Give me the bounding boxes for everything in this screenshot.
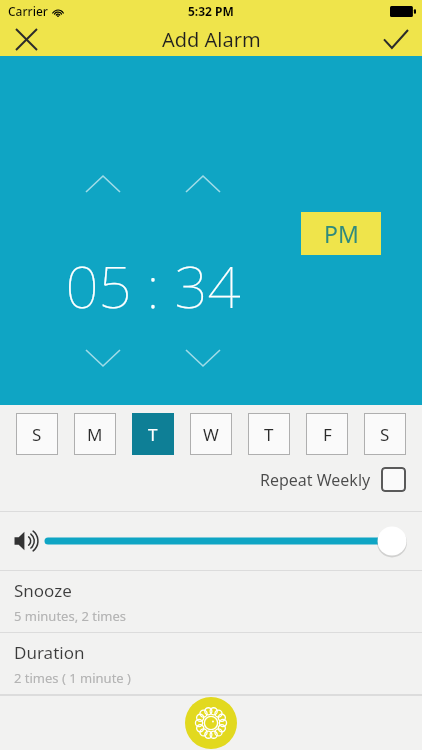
button[interactable]: Duration [0,633,422,694]
staticText: T [264,423,274,446]
staticText: M [87,423,103,446]
button[interactable]: Cancel [0,22,52,56]
button[interactable]: Settings [185,697,237,749]
button[interactable]: Minute up [177,166,229,202]
button[interactable]: Repeat Weekly [0,467,406,492]
button[interactable]: T [132,413,174,455]
button[interactable]: Hour down [77,340,129,376]
button[interactable]: Hour up [77,166,129,202]
button[interactable]: M [74,413,116,455]
button[interactable]: Save [370,22,422,56]
button[interactable]: Snooze [0,571,422,632]
staticText: 5:32 PM [188,3,234,19]
other: Volume [14,530,40,552]
button[interactable]: S [16,413,58,455]
button[interactable]: PM [301,212,381,255]
staticText: 5 minutes, 2 times [14,607,127,625]
staticText: Add Alarm [162,26,261,53]
staticText: Snooze [14,579,72,602]
staticText: S [380,423,390,446]
staticText: W [203,423,219,446]
staticText: 2 times ( 1 minute ) [14,669,131,687]
staticText: S [32,423,42,446]
staticText: Duration [14,641,85,664]
button[interactable]: Minute down [177,340,229,376]
button[interactable]: W [190,413,232,455]
button[interactable]: F [306,413,348,455]
button[interactable]: T [248,413,290,455]
button[interactable]: Volume slider [46,521,412,561]
button[interactable]: S [364,413,406,455]
staticText: Carrier [8,3,48,19]
staticText: T [148,423,158,446]
staticText: F [323,423,332,446]
staticText: 05 : 34 [65,246,241,321]
staticText: PM [324,218,359,249]
staticText: Repeat Weekly [260,469,371,491]
